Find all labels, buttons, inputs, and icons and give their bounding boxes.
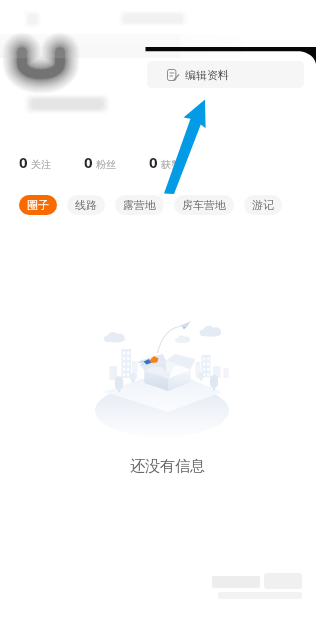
- staticText: 关注: [31, 158, 51, 171]
- staticText: 游记: [252, 198, 274, 212]
- button[interactable]: 房车营地: [174, 195, 234, 215]
- staticText: 还没有信息: [130, 457, 205, 476]
- staticText: 获赞: [161, 158, 181, 171]
- button[interactable]: 线路: [67, 195, 105, 215]
- button[interactable]: 0: [19, 152, 51, 172]
- staticText: 露营地: [123, 198, 156, 212]
- button[interactable]: 露营地: [115, 195, 164, 215]
- staticText: 圈子: [27, 198, 49, 212]
- staticText: 0: [19, 152, 28, 172]
- staticText: 0: [84, 152, 93, 172]
- staticText: 编辑资料: [185, 68, 229, 82]
- button[interactable]: 0: [149, 152, 181, 172]
- button[interactable]: 圈子: [19, 195, 57, 215]
- button[interactable]: 0: [84, 152, 116, 172]
- staticText: 线路: [75, 198, 97, 212]
- staticText: 粉丝: [96, 158, 116, 171]
- button[interactable]: 游记: [244, 195, 282, 215]
- staticText: 0: [149, 152, 158, 172]
- button[interactable]: 编辑资料: [147, 61, 304, 88]
- staticText: 房车营地: [182, 198, 226, 212]
